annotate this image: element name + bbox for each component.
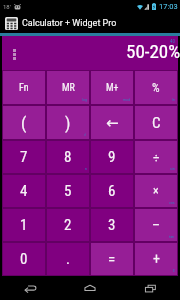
staticText: ): [65, 113, 71, 133]
staticText: n: [85, 166, 87, 171]
staticText: cos: [169, 200, 175, 205]
button[interactable]: 9: [91, 141, 133, 173]
button[interactable]: –: [135, 209, 177, 241]
staticText: .: [66, 250, 70, 268]
button[interactable]: More options: [13, 49, 16, 60]
staticText: 7: [20, 148, 28, 166]
button[interactable]: ): [47, 106, 89, 139]
button[interactable]: 8: [47, 141, 89, 173]
staticText: 2: [64, 216, 72, 234]
staticText: ÷: [153, 150, 160, 165]
staticText: sin: [170, 166, 175, 171]
staticText: 1: [20, 216, 28, 234]
button[interactable]: 0: [3, 243, 45, 275]
staticText: 5: [64, 182, 72, 200]
staticText: tan: [169, 234, 175, 239]
staticText: ←: [106, 114, 119, 131]
staticText: 40: [170, 38, 175, 44]
staticText: log: [82, 97, 87, 102]
button[interactable]: Back: [0, 276, 60, 300]
staticText: +: [153, 251, 160, 267]
button[interactable]: 1: [3, 209, 45, 241]
button[interactable]: 7: [3, 141, 45, 173]
button[interactable]: 2: [47, 209, 89, 241]
button[interactable]: M+: [91, 71, 133, 104]
staticText: ln: [172, 97, 175, 102]
button[interactable]: 3: [91, 209, 133, 241]
staticText: 9: [108, 148, 116, 166]
staticText: C: [152, 114, 161, 132]
button[interactable]: 5: [47, 175, 89, 207]
button[interactable]: %: [135, 71, 177, 104]
staticText: ×: [153, 184, 159, 198]
button[interactable]: .: [47, 243, 89, 275]
button[interactable]: =: [91, 243, 133, 275]
button[interactable]: ×: [135, 175, 177, 207]
staticText: 0: [20, 250, 28, 268]
staticText: M+: [106, 82, 119, 94]
button[interactable]: C: [135, 106, 177, 139]
staticText: 3: [108, 216, 116, 234]
staticText: 18': [3, 3, 11, 10]
staticText: 8: [64, 148, 72, 166]
staticText: 17:03: [159, 2, 178, 11]
button[interactable]: ÷: [135, 141, 177, 173]
button[interactable]: Recent apps: [120, 276, 180, 300]
button[interactable]: +: [135, 243, 177, 275]
staticText: MR: [62, 82, 75, 94]
staticText: 6: [108, 182, 116, 200]
staticText: %: [152, 81, 160, 95]
button[interactable]: (: [3, 106, 45, 139]
button[interactable]: Fn: [3, 71, 45, 104]
staticText: 4: [20, 182, 28, 200]
button[interactable]: ←: [91, 106, 133, 139]
staticText: √: [84, 132, 87, 137]
staticText: (: [21, 113, 27, 133]
button[interactable]: Calculator + Widget Pro: [5, 13, 180, 33]
staticText: mod: [123, 97, 131, 102]
button[interactable]: 4: [3, 175, 45, 207]
staticText: E: [173, 268, 175, 273]
staticText: –: [152, 217, 161, 233]
staticText: Fn: [19, 82, 29, 94]
button[interactable]: MR: [47, 71, 89, 104]
staticText: 50-20%: [126, 40, 180, 62]
button[interactable]: Home: [60, 276, 120, 300]
staticText: Calculator + Widget Pro: [22, 18, 117, 29]
button[interactable]: 6: [91, 175, 133, 207]
staticText: =: [108, 250, 116, 268]
